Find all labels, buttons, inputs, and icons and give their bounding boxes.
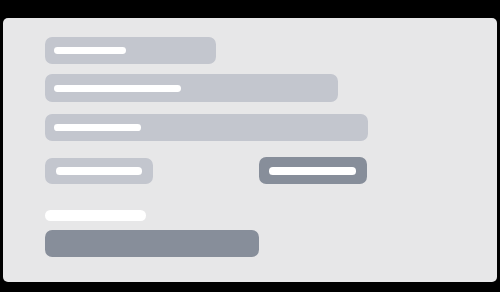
button[interactable]: Secondary action [259, 157, 367, 184]
button[interactable]: Primary action [45, 230, 259, 257]
button[interactable]: List item 1 [45, 37, 216, 64]
button[interactable]: List item 4 [45, 158, 153, 184]
button[interactable]: List item 2 [45, 74, 338, 102]
button[interactable]: List item 3 [45, 114, 368, 141]
button[interactable]: Caption [45, 210, 146, 221]
